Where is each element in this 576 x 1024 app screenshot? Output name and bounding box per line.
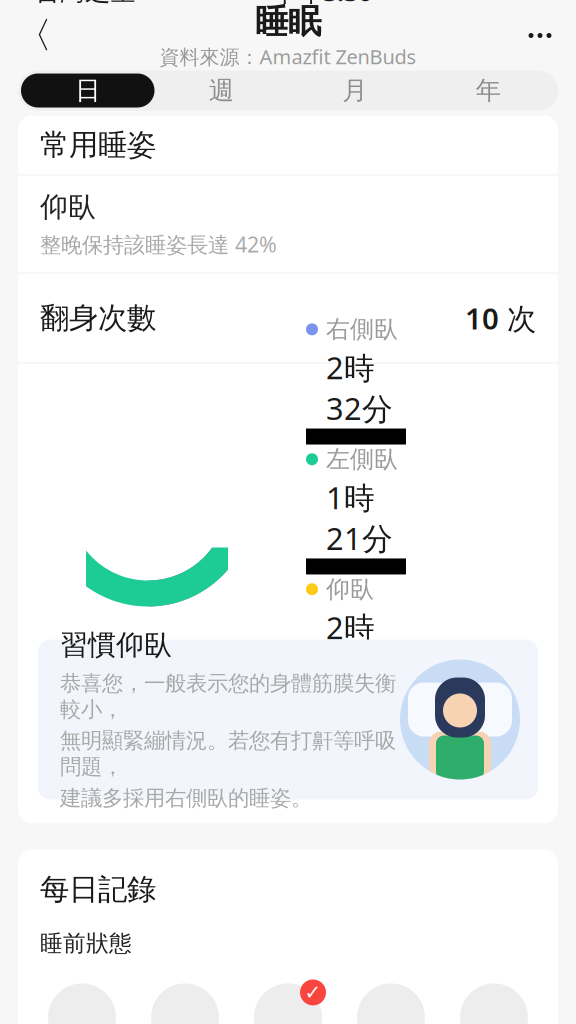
staticText: 整晚保持該睡姿長達 42% (40, 230, 277, 258)
staticText: 2時50分 (326, 607, 393, 688)
staticText: ✓ (304, 981, 321, 1004)
button[interactable]: 仰臥 (18, 175, 558, 272)
staticText: 月 (342, 75, 367, 106)
button[interactable]: 睡前狀態選項 (456, 979, 532, 1024)
staticText: 週 (209, 75, 234, 106)
button[interactable]: 週 (154, 73, 288, 107)
button[interactable]: 睡前狀態選項 (44, 979, 120, 1024)
button[interactable]: 月 (288, 73, 421, 107)
staticText: 常用睡姿 (40, 127, 156, 163)
staticText: 年 (476, 75, 501, 106)
staticText: 習慣仰臥 (60, 628, 172, 662)
staticText: 建議多採用右側臥的睡姿。 (60, 785, 312, 811)
staticText: 〈 (16, 13, 52, 58)
staticText: 資料來源：Amazfit ZenBuds (159, 43, 416, 70)
staticText: 台灣之星 (35, 0, 135, 7)
staticText: 2時32分 (326, 347, 393, 428)
button[interactable]: 睡前狀態選項 (250, 979, 326, 1024)
staticText: 翻身次數 (40, 300, 156, 336)
button[interactable]: 返回 (10, 11, 58, 59)
button[interactable]: 更多 (514, 11, 566, 59)
button[interactable]: 年 (421, 73, 555, 107)
staticText: 下午3:30 (273, 0, 372, 8)
staticText: 10 次 (465, 298, 536, 337)
staticText: 睡前狀態 (40, 930, 132, 957)
button[interactable]: 睡前狀態選項 (353, 979, 429, 1024)
staticText: 無明顯緊繃情況。若您有打鼾等呼吸問題， (60, 728, 396, 780)
staticText: 恭喜您，一般表示您的身體筋膜失衡較小， (60, 670, 396, 723)
staticText: 右側臥 (326, 315, 398, 344)
staticText: 仰臥 (326, 574, 374, 604)
staticText: 睡眠 (255, 1, 321, 42)
staticText: 日 (75, 75, 100, 106)
staticText: 每日記錄 (40, 872, 156, 908)
staticText: 1時21分 (326, 477, 393, 558)
button[interactable]: 日 (21, 73, 154, 107)
staticText: 仰臥 (40, 190, 96, 224)
staticText: 左側臥 (326, 444, 398, 474)
button[interactable]: 睡前狀態選項 (147, 979, 223, 1024)
